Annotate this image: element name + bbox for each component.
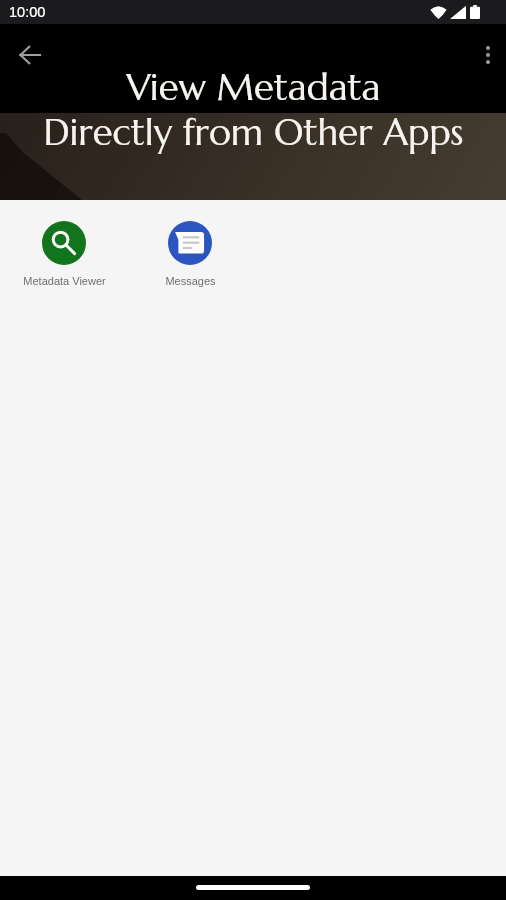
button[interactable]: Navigate up [10,35,50,75]
staticText: Messages [165,275,216,287]
button[interactable]: Home [196,885,310,890]
button[interactable]: Messages [127,221,253,287]
staticText: View Metadata Directly from Other Apps [43,64,464,155]
staticText: 10:00 [9,4,46,20]
button[interactable]: Metadata Viewer [1,221,127,287]
button[interactable]: More options [468,35,506,75]
staticText: Metadata Viewer [23,275,106,287]
